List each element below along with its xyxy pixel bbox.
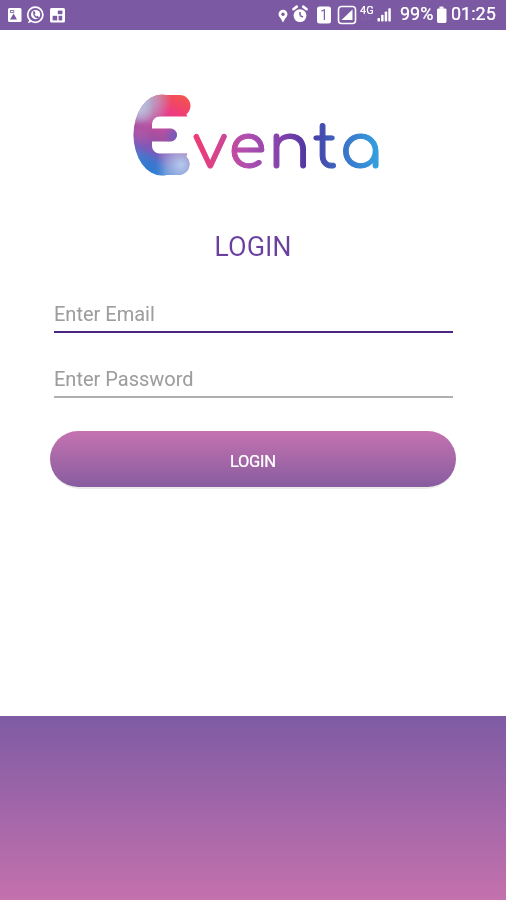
- staticText: 01:25: [451, 3, 496, 24]
- button[interactable]: Enter Password: [54, 367, 453, 398]
- staticText: venta: [193, 113, 384, 182]
- staticText: venta: [193, 113, 384, 182]
- staticText: LTE: [361, 14, 372, 22]
- staticText: Enter Email: [54, 302, 155, 325]
- staticText: LOGIN: [0, 231, 506, 263]
- staticText: LOGIN: [230, 452, 276, 471]
- staticText: Enter Password: [54, 367, 194, 390]
- button[interactable]: LOGIN: [50, 431, 456, 487]
- staticText: 4G: [360, 4, 374, 17]
- button[interactable]: Enter Email: [54, 302, 453, 333]
- staticText: 1: [320, 7, 328, 23]
- staticText: 99%: [400, 3, 434, 24]
